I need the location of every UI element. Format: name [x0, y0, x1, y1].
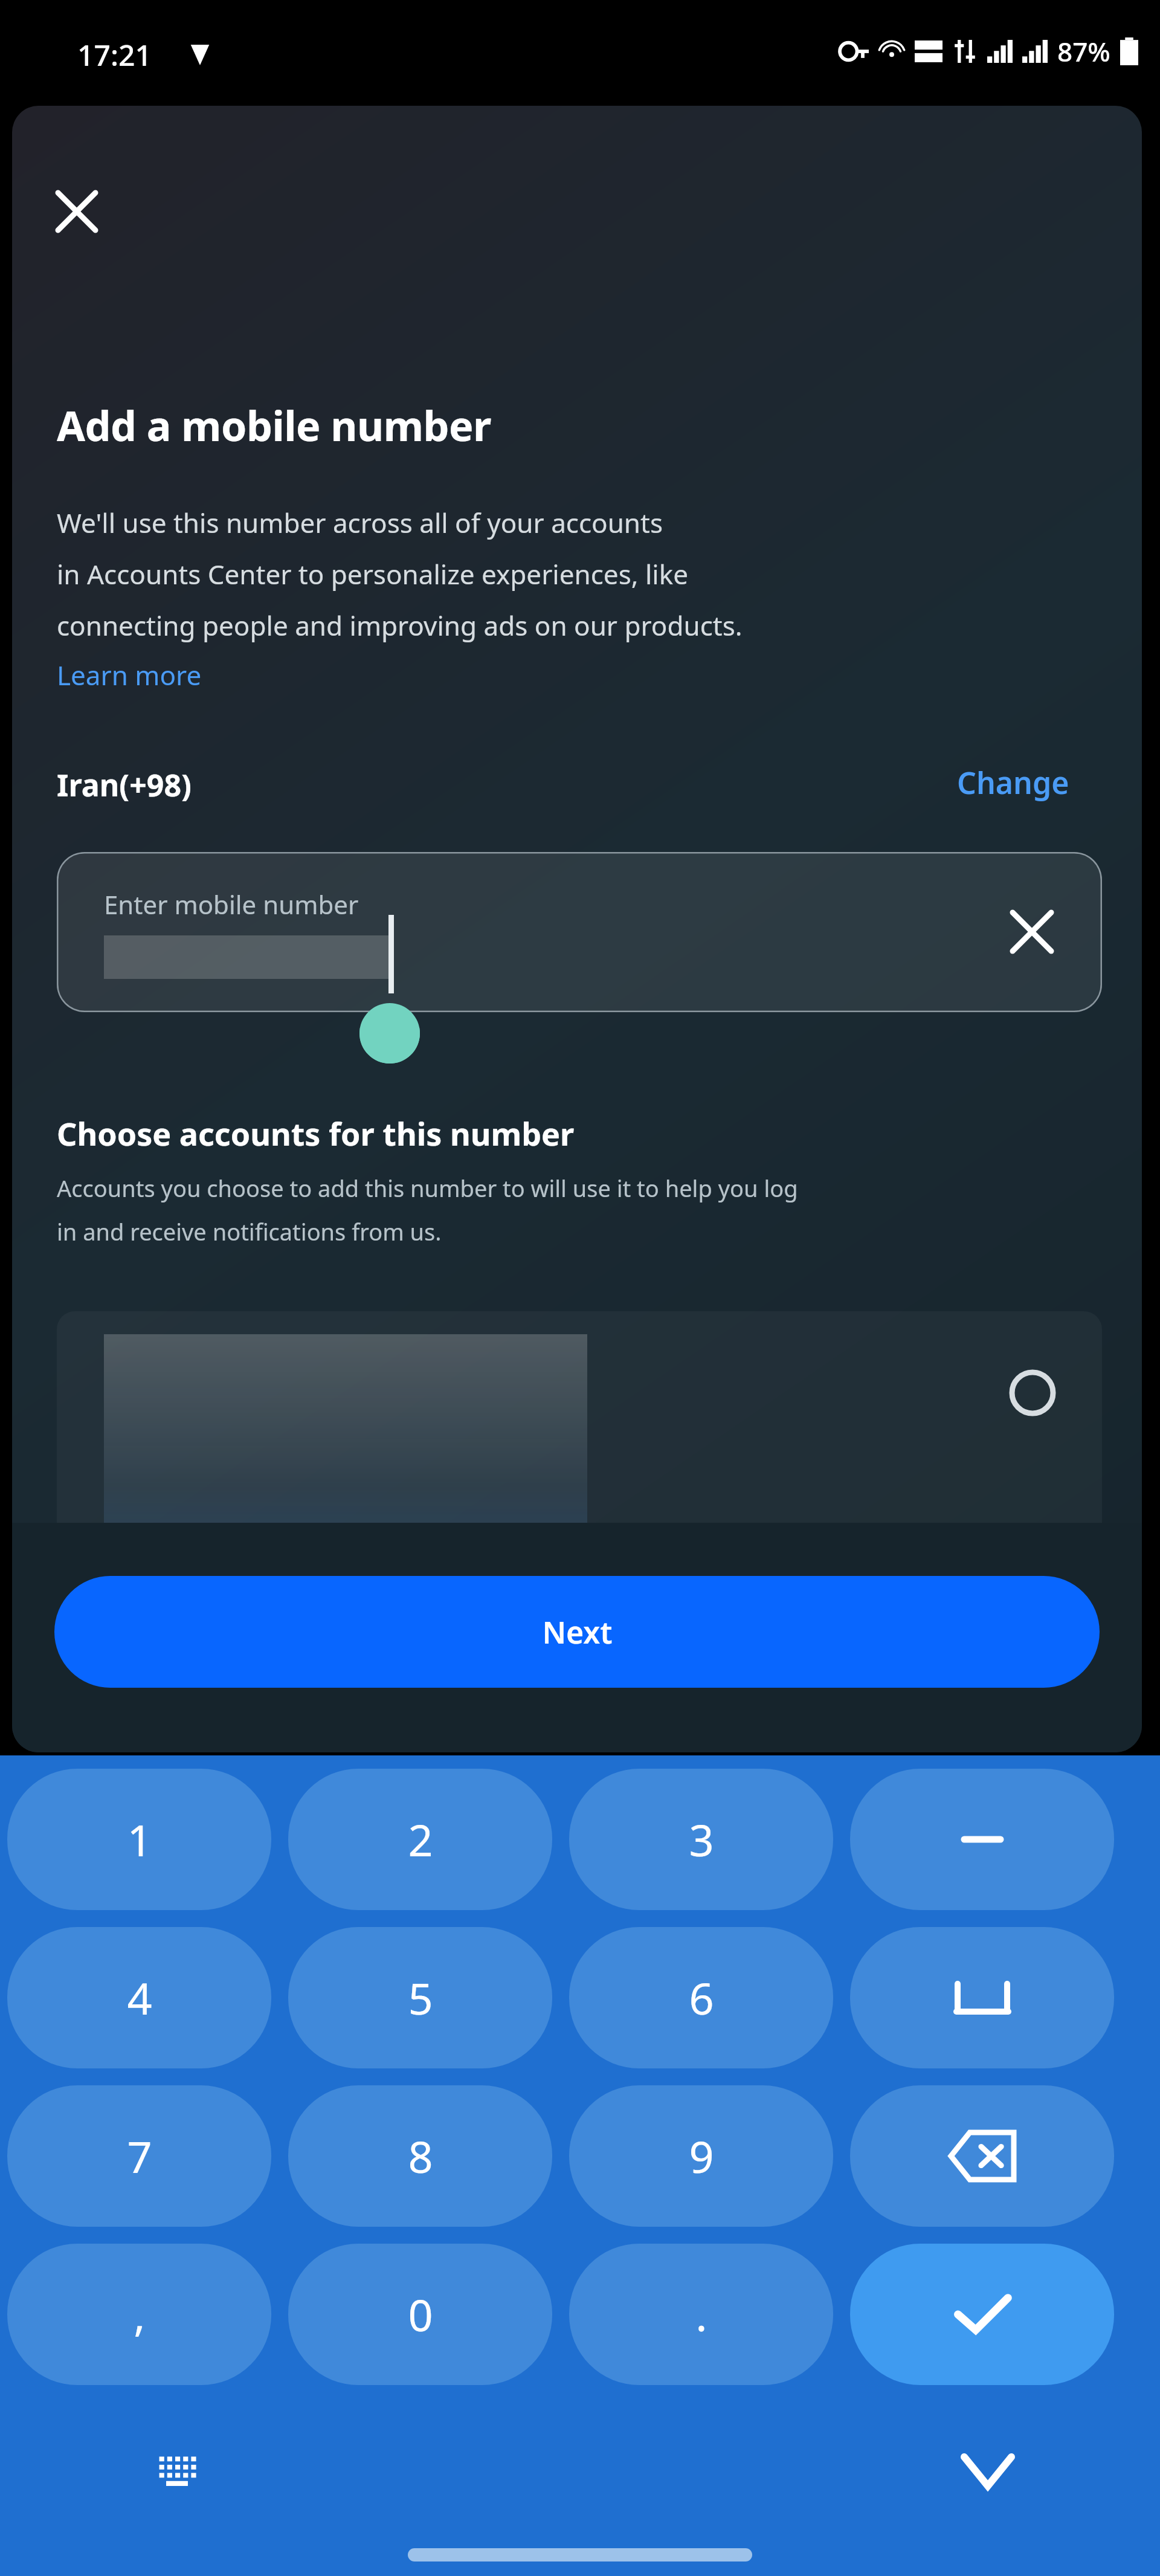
- staticText: 6: [689, 1968, 714, 2027]
- staticText: 1: [127, 1810, 152, 1869]
- staticText: 3: [689, 1810, 714, 1869]
- button[interactable]: 3: [569, 1769, 833, 1910]
- button[interactable]: Change: [955, 757, 1072, 808]
- staticText: 7: [127, 2126, 152, 2186]
- button[interactable]: Period: [569, 2244, 833, 2385]
- button[interactable]: Dash: [850, 1769, 1114, 1910]
- staticText: Change: [957, 762, 1069, 803]
- staticText: Iran(+98): [57, 764, 192, 805]
- button[interactable]: 5: [288, 1927, 552, 2068]
- button[interactable]: Select account two: [975, 1522, 1090, 1636]
- staticText: 9: [689, 2126, 714, 2186]
- staticText: ,: [134, 2285, 146, 2344]
- staticText: 5: [408, 1968, 433, 2027]
- staticText: 2: [408, 1810, 433, 1869]
- staticText: 17:21: [77, 35, 152, 74]
- staticText: We'll use this number across all of your…: [57, 505, 743, 644]
- staticText: 0: [408, 2285, 433, 2344]
- staticText: Add a mobile number: [57, 397, 491, 453]
- button[interactable]: 1: [7, 1769, 271, 1910]
- button[interactable]: Space: [850, 1927, 1114, 2068]
- button[interactable]: 2: [288, 1769, 552, 1910]
- staticText: 87%: [1057, 33, 1110, 69]
- button[interactable]: Enter mobile number: [57, 852, 1102, 1012]
- button[interactable]: 8: [288, 2085, 552, 2227]
- button[interactable]: 6: [569, 1927, 833, 2068]
- button[interactable]: Done: [850, 2244, 1114, 2385]
- staticText: 8: [408, 2126, 433, 2186]
- button[interactable]: Select account one: [975, 1335, 1090, 1450]
- staticText: .: [695, 2285, 707, 2344]
- button[interactable]: Backspace: [850, 2085, 1114, 2227]
- staticText: Next: [542, 1612, 613, 1653]
- staticText: Enter mobile number: [104, 887, 359, 922]
- staticText: 4: [127, 1968, 152, 2027]
- button[interactable]: Clear: [993, 893, 1071, 970]
- button[interactable]: Hide keyboard: [942, 2426, 1033, 2517]
- button[interactable]: 0: [288, 2244, 552, 2385]
- button[interactable]: Comma: [7, 2244, 271, 2385]
- button[interactable]: 4: [7, 1927, 271, 2068]
- staticText: Accounts you choose to add this number t…: [57, 1172, 798, 1247]
- staticText: Learn more: [57, 657, 202, 693]
- button[interactable]: Learn more: [57, 657, 202, 693]
- button[interactable]: Switch keyboard: [133, 2426, 224, 2517]
- button[interactable]: 7: [7, 2085, 271, 2227]
- button[interactable]: Next: [54, 1576, 1100, 1688]
- button[interactable]: 9: [569, 2085, 833, 2227]
- button[interactable]: Close: [43, 178, 110, 245]
- staticText: Choose accounts for this number: [57, 1112, 575, 1155]
